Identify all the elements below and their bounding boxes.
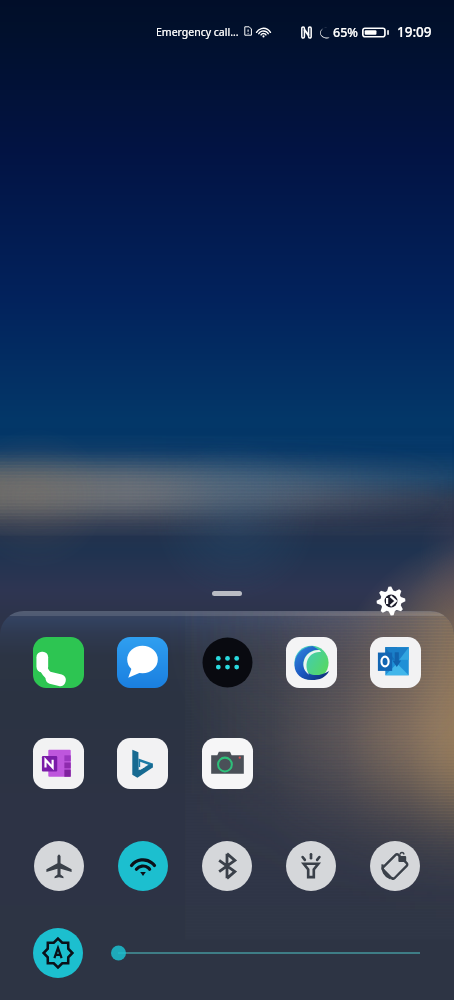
button[interactable]: App bbox=[33, 738, 84, 789]
button[interactable]: App bbox=[286, 637, 337, 688]
button[interactable]: App bbox=[202, 738, 253, 789]
staticText: 19:09 bbox=[397, 23, 432, 41]
button[interactable]: Brightness slider bbox=[111, 943, 420, 963]
button[interactable]: App bbox=[117, 738, 168, 789]
button[interactable]: Wi-Fi bbox=[118, 841, 168, 891]
button[interactable]: App bbox=[202, 637, 253, 688]
button[interactable]: Auto-rotate bbox=[370, 841, 420, 891]
button[interactable]: App bbox=[117, 637, 168, 688]
button[interactable]: Flashlight bbox=[286, 841, 336, 891]
button[interactable]: Settings bbox=[376, 586, 406, 616]
button[interactable]: App bbox=[370, 637, 421, 688]
button[interactable]: Auto brightness bbox=[33, 928, 83, 978]
staticText: 65% bbox=[333, 24, 358, 41]
staticText: Emergency call... bbox=[156, 25, 239, 39]
button[interactable]: App bbox=[33, 637, 84, 688]
button[interactable]: Bluetooth bbox=[202, 841, 252, 891]
button[interactable]: Airplane mode bbox=[34, 841, 84, 891]
